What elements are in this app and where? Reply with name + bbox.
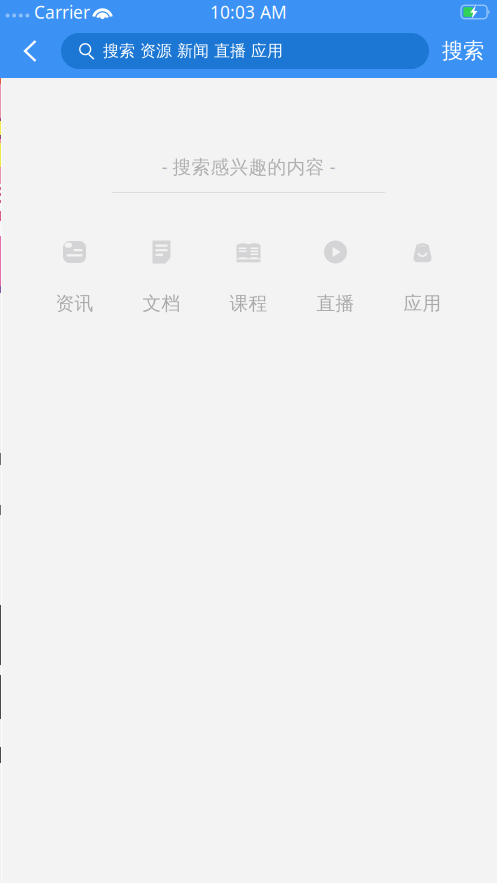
staticText: 资讯 <box>55 292 93 315</box>
staticText: 搜索 <box>442 38 484 64</box>
staticText: Carrier <box>34 0 90 23</box>
staticText: 应用 <box>403 292 441 315</box>
staticText: 文档 <box>142 292 180 315</box>
staticText: 课程 <box>229 292 267 315</box>
button[interactable]: 文档 <box>126 240 196 312</box>
staticText: 10:03 AM <box>210 0 287 23</box>
button[interactable]: 资讯 <box>39 240 109 312</box>
button[interactable]: Back <box>0 29 61 73</box>
staticText: 搜索 资源 新闻 直播 应用 <box>103 41 283 61</box>
button[interactable]: 直播 <box>300 240 370 312</box>
button[interactable]: 课程 <box>213 240 283 312</box>
button[interactable]: 搜索 资源 新闻 直播 应用 <box>61 33 429 69</box>
staticText: - 搜索感兴趣的内容 - <box>161 154 335 179</box>
staticText: 直播 <box>316 292 354 315</box>
button[interactable]: 搜索 <box>429 31 497 71</box>
button[interactable]: 应用 <box>387 240 457 312</box>
